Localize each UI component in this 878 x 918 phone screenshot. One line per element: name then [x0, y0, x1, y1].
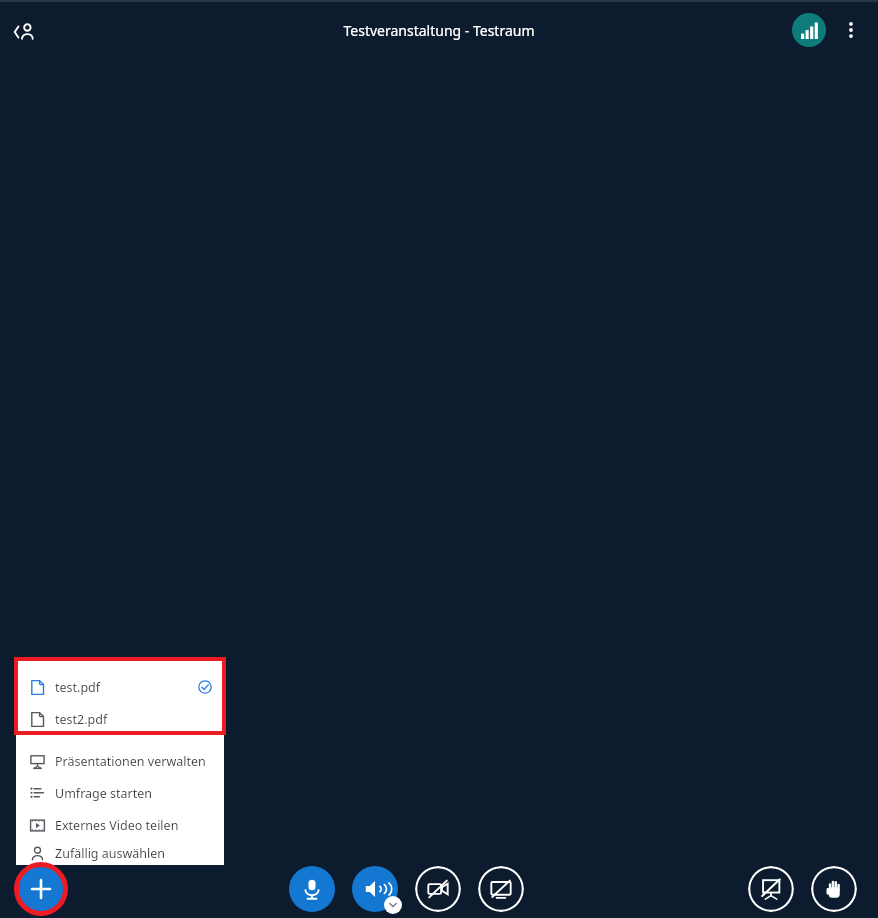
staticText: Externes Video teilen [55, 817, 179, 834]
button[interactable]: Teilnehmerliste [4, 12, 44, 52]
button[interactable]: Verbindungsstatus [792, 13, 826, 47]
button[interactable]: Audio verlassen [352, 866, 398, 912]
button[interactable]: Audiooptionen [384, 896, 402, 914]
button[interactable]: test.pdf [16, 671, 224, 703]
button[interactable]: Weitere Optionen [834, 13, 868, 47]
button[interactable]: Webcam freigeben [415, 866, 461, 912]
button[interactable]: Präsentationen verwalten [16, 745, 224, 777]
button[interactable]: Zufällig auswählen [16, 841, 224, 865]
staticText: Präsentationen verwalten [55, 753, 206, 770]
staticText: Umfrage starten [55, 785, 153, 802]
button[interactable]: test2.pdf [16, 703, 224, 735]
button[interactable]: Hand heben [811, 866, 857, 912]
button[interactable]: Präsentation wiederherstellen [748, 866, 794, 912]
staticText: test2.pdf [55, 711, 108, 728]
button[interactable]: Bildschirm freigeben [478, 866, 524, 912]
button[interactable]: Aktionen [14, 862, 68, 916]
staticText: Zufällig auswählen [55, 845, 166, 862]
staticText: test.pdf [55, 679, 101, 696]
button[interactable]: Mikrofon stummschalten [289, 866, 335, 912]
staticText: Testveranstaltung - Testraum [343, 21, 535, 40]
button[interactable]: Umfrage starten [16, 777, 224, 809]
button[interactable]: Externes Video teilen [16, 809, 224, 841]
